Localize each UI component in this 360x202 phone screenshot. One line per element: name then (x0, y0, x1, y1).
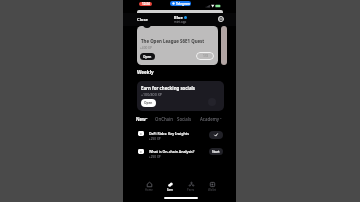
staticText: Start (212, 150, 220, 154)
button[interactable]: DeFi Risks: Key Insights (137, 130, 224, 146)
button[interactable]: Start (209, 148, 223, 155)
staticText: 1/3 (203, 54, 208, 58)
staticText: 12:34 (142, 2, 150, 6)
staticText: +250 XP (149, 137, 161, 141)
button[interactable]: Academy (200, 116, 222, 122)
button[interactable]: Open (141, 99, 156, 107)
staticText: Earn for checking socials (141, 85, 196, 91)
staticText: 2 (146, 116, 148, 119)
staticText: DeFi Risks: Key Insights (149, 131, 189, 136)
staticText: Socials (177, 116, 192, 122)
button[interactable]: Socials (177, 116, 192, 122)
button[interactable]: Earn (161, 182, 179, 192)
button[interactable]: Peers (182, 182, 200, 192)
staticText: Blue (174, 15, 183, 20)
staticText: +100/400 XP (141, 92, 162, 97)
staticText: Telegram (176, 2, 190, 6)
button[interactable]: Completed (209, 131, 223, 139)
staticText: The Open League S6E1 Quest (141, 38, 205, 44)
staticText: Open (143, 55, 152, 59)
button[interactable]: Page settings (218, 16, 224, 22)
staticText: Academy (200, 116, 220, 122)
button[interactable]: Home (140, 182, 158, 192)
staticText: New (136, 116, 146, 122)
button[interactable]: New (136, 116, 148, 122)
button[interactable]: Open (140, 53, 155, 60)
staticText: Peers (187, 188, 195, 192)
button[interactable]: The Open League S6E1 Quest (137, 26, 218, 65)
staticText: +250 XP (149, 155, 161, 159)
staticText: Wallet (208, 188, 217, 192)
button[interactable]: 1/3 (196, 52, 214, 60)
button[interactable]: What is On-chain Analysis? (137, 148, 224, 164)
staticText: OnChain (155, 116, 173, 122)
button[interactable]: Close (137, 17, 148, 23)
staticText: Home (145, 188, 153, 192)
button[interactable]: Earn for checking socials (137, 81, 224, 111)
staticText: Open (144, 101, 153, 105)
staticText: mint.app (174, 20, 187, 24)
staticText: +400 XP (140, 46, 152, 50)
button[interactable]: OnChain (155, 116, 173, 122)
staticText: What is On-chain Analysis? (149, 149, 195, 154)
staticText: Weekly (137, 69, 154, 75)
button[interactable]: Wallet (203, 182, 221, 192)
staticText: 4 (220, 116, 222, 119)
staticText: Earn (167, 188, 173, 192)
